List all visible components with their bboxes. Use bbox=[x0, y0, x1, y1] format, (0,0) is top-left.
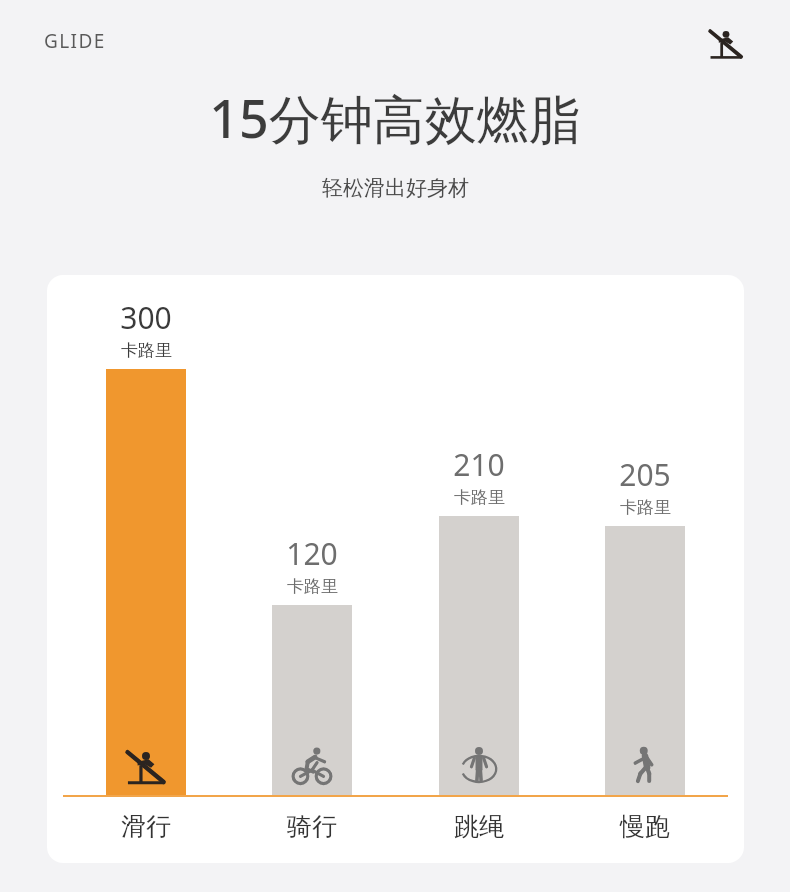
staticText: 滑行 bbox=[121, 811, 171, 842]
button[interactable]: 跳绳 bbox=[409, 811, 549, 842]
button[interactable]: 300 bbox=[76, 297, 216, 795]
button[interactable]: Glide trainer bbox=[700, 22, 752, 64]
staticText: 15分钟高效燃脂 bbox=[209, 82, 581, 153]
staticText: 跳绳 bbox=[454, 811, 504, 842]
button[interactable]: 骑行 bbox=[242, 811, 382, 842]
button[interactable]: 205 bbox=[575, 454, 715, 795]
staticText: 210 bbox=[453, 444, 505, 485]
staticText: 300 bbox=[120, 297, 172, 338]
staticText: GLIDE bbox=[44, 28, 106, 54]
staticText: 慢跑 bbox=[620, 811, 670, 842]
staticText: 卡路里 bbox=[620, 497, 671, 518]
staticText: 骑行 bbox=[287, 811, 337, 842]
staticText: 205 bbox=[619, 454, 671, 495]
staticText: 卡路里 bbox=[287, 576, 338, 597]
staticText: 卡路里 bbox=[121, 340, 172, 361]
staticText: 120 bbox=[286, 533, 338, 574]
button[interactable]: 慢跑 bbox=[575, 811, 715, 842]
staticText: 卡路里 bbox=[454, 487, 505, 508]
button[interactable]: 120 bbox=[242, 533, 382, 795]
staticText: 轻松滑出好身材 bbox=[322, 175, 469, 201]
button[interactable]: 滑行 bbox=[76, 811, 216, 842]
button[interactable]: 210 bbox=[409, 444, 549, 795]
